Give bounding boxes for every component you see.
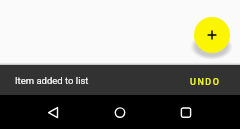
button[interactable]: Back (36, 95, 70, 129)
button[interactable]: Home (103, 95, 137, 129)
button[interactable]: UNDO (190, 77, 221, 88)
button[interactable]: Add (194, 17, 230, 53)
staticText: Item added to list (15, 75, 89, 86)
button[interactable]: Recents (169, 95, 203, 129)
staticText: UNDO (190, 77, 221, 88)
